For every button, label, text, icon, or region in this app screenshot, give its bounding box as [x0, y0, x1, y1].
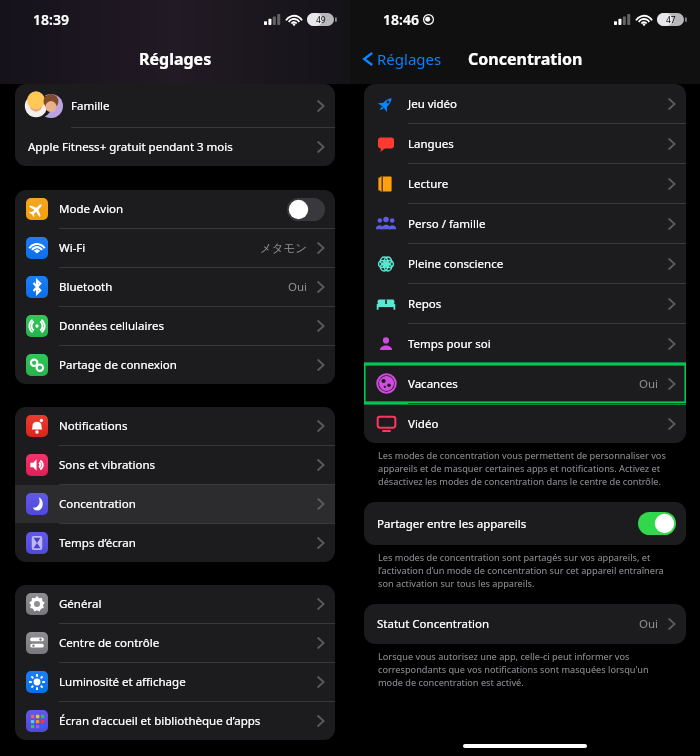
button[interactable]: Réglages: [358, 45, 446, 73]
staticText: 18:46: [383, 10, 419, 29]
staticText: Apple Fitness+ gratuit pendant 3 mois: [28, 139, 314, 155]
staticText: Écran d’accueil et bibliothèque d’apps: [59, 713, 314, 729]
staticText: Oui: [639, 616, 659, 632]
button[interactable]: Repos: [364, 284, 686, 323]
button[interactable]: Vidéo: [364, 404, 686, 443]
staticText: Les modes de concentration sont partagés…: [378, 551, 676, 590]
staticText: Les modes de concentration vous permette…: [378, 449, 676, 488]
staticText: Oui: [288, 279, 308, 295]
button[interactable]: Famille: [15, 84, 335, 127]
button[interactable]: Jeu vidéo: [364, 84, 686, 123]
staticText: Lecture: [408, 176, 665, 192]
button[interactable]: Sons et vibrations: [15, 446, 335, 484]
staticText: Concentration: [59, 496, 314, 512]
staticText: Repos: [408, 296, 665, 312]
button[interactable]: Vacances: [364, 364, 686, 403]
staticText: Lorsque vous autorisez une app, celle-ci…: [378, 650, 676, 689]
button[interactable]: Perso / famille: [364, 204, 686, 243]
staticText: Bluetooth: [59, 279, 288, 295]
button[interactable]: Bluetooth: [15, 268, 335, 306]
staticText: Centre de contrôle: [59, 635, 314, 651]
button[interactable]: Temps pour soi: [364, 324, 686, 363]
staticText: Langues: [408, 136, 665, 152]
staticText: Oui: [639, 376, 659, 392]
staticText: Perso / famille: [408, 216, 665, 232]
button[interactable]: Concentration: [15, 485, 335, 523]
staticText: メタモン: [260, 241, 308, 255]
staticText: 49: [316, 14, 326, 26]
button[interactable]: Statut Concentration: [364, 604, 686, 644]
button[interactable]: Notifications: [15, 407, 335, 445]
staticText: Sons et vibrations: [59, 457, 314, 473]
staticText: Luminosité et affichage: [59, 674, 314, 690]
button[interactable]: Langues: [364, 124, 686, 163]
staticText: Temps pour soi: [408, 336, 665, 352]
button[interactable]: Partager entre les appareils: [364, 502, 686, 545]
staticText: Jeu vidéo: [408, 96, 665, 112]
staticText: Données cellulaires: [59, 318, 314, 334]
staticText: Wi-Fi: [59, 240, 260, 256]
button[interactable]: Lecture: [364, 164, 686, 203]
staticText: Vidéo: [408, 416, 665, 432]
button[interactable]: Luminosité et affichage: [15, 663, 335, 701]
staticText: Notifications: [59, 418, 314, 434]
button[interactable]: Écran d’accueil et bibliothèque d’apps: [15, 702, 335, 740]
button[interactable]: Général: [15, 585, 335, 623]
button[interactable]: Apple Fitness+ gratuit pendant 3 mois: [15, 128, 335, 166]
button[interactable]: Mode Avion: [15, 190, 335, 228]
staticText: Réglages: [139, 48, 212, 70]
button[interactable]: Wi-Fi: [15, 229, 335, 267]
staticText: Partage de connexion: [59, 357, 314, 373]
staticText: Général: [59, 596, 314, 612]
staticText: Pleine conscience: [408, 256, 665, 272]
button[interactable]: Partage de connexion: [15, 346, 335, 384]
staticText: 18:39: [33, 10, 69, 29]
staticText: Statut Concentration: [377, 616, 639, 632]
button[interactable]: Données cellulaires: [15, 307, 335, 345]
staticText: 47: [666, 14, 676, 26]
staticText: Concentration: [468, 48, 583, 70]
staticText: Vacances: [408, 376, 639, 392]
button[interactable]: Centre de contrôle: [15, 624, 335, 662]
button[interactable]: Pleine conscience: [364, 244, 686, 283]
staticText: Réglages: [377, 49, 442, 69]
button[interactable]: Temps d’écran: [15, 524, 335, 562]
staticText: Temps d’écran: [59, 535, 314, 551]
staticText: Famille: [71, 98, 314, 114]
staticText: Partager entre les appareils: [377, 516, 638, 532]
staticText: Mode Avion: [59, 201, 287, 217]
